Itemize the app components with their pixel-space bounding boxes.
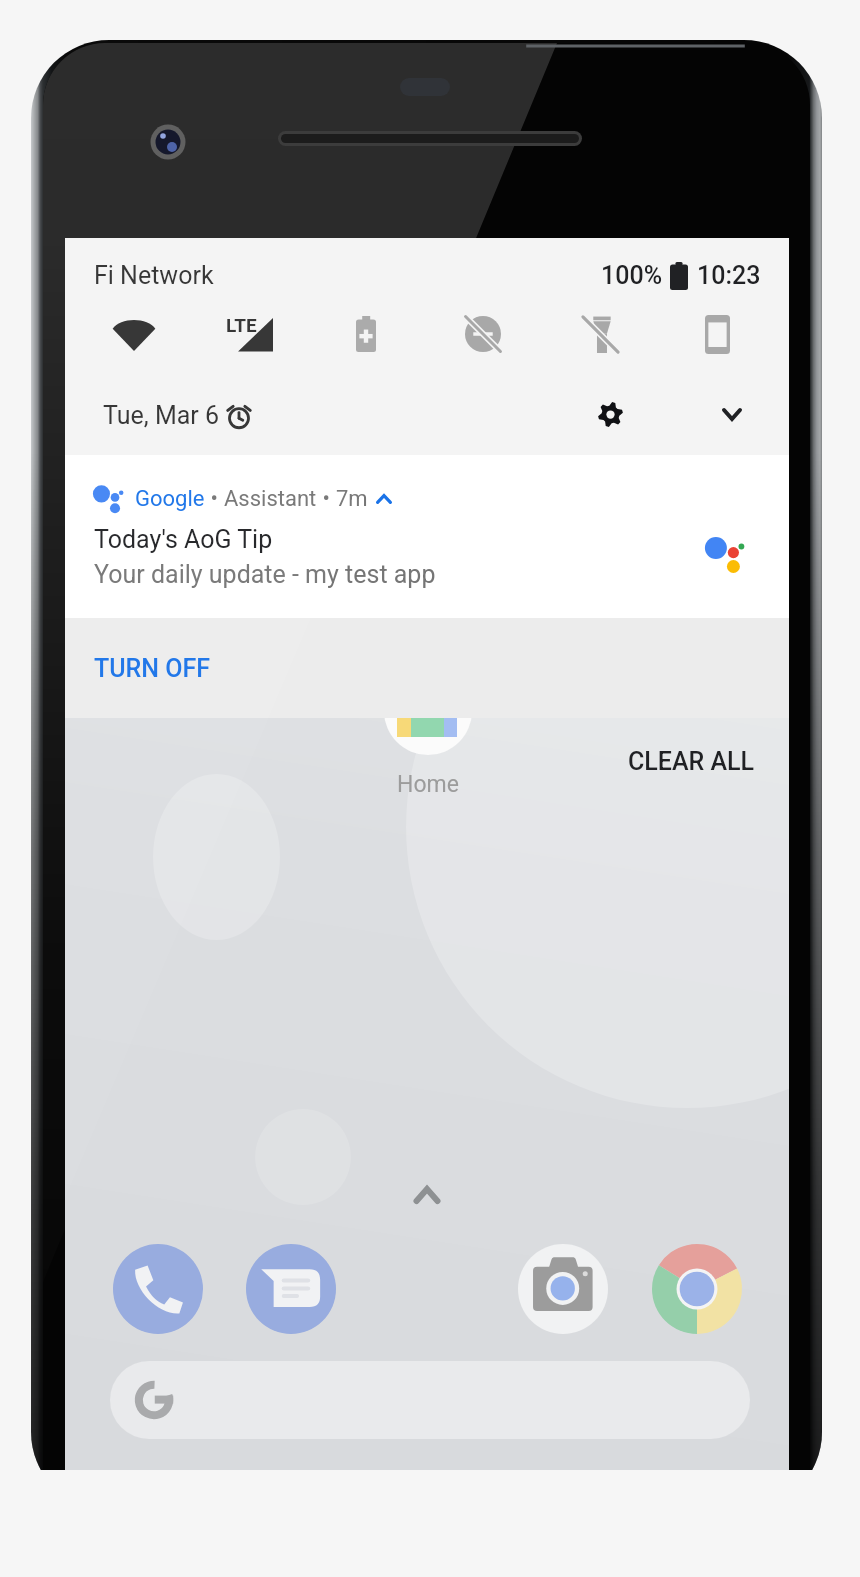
staticText: Fi Network	[94, 261, 214, 290]
button[interactable]: LTE signal	[221, 305, 279, 363]
other: Auto rotate	[705, 315, 730, 354]
other: LTE signal	[227, 314, 273, 354]
button[interactable]	[65, 455, 789, 618]
button[interactable]: Expand quick settings	[710, 392, 754, 436]
staticText: 10:23	[697, 261, 761, 290]
button[interactable]: Messages	[246, 1244, 336, 1334]
staticText: LTE	[226, 314, 257, 336]
other: Battery saver	[356, 316, 376, 352]
staticText: CLEAR ALL	[628, 747, 755, 776]
other: Alarm set	[225, 402, 253, 430]
button[interactable]: Settings	[588, 392, 632, 436]
button[interactable]: Battery saver	[337, 305, 395, 363]
button[interactable]: Camera	[518, 1244, 608, 1334]
button[interactable]: Do not disturb	[454, 305, 512, 363]
staticText: Today's AoG Tip	[94, 525, 273, 554]
staticText: 7m	[336, 486, 368, 512]
staticText: Home	[397, 771, 459, 798]
button[interactable]: Auto rotate	[688, 305, 746, 363]
staticText: •	[317, 486, 336, 512]
button[interactable]: Chrome	[652, 1244, 742, 1334]
staticText: TURN OFF	[94, 654, 211, 683]
button[interactable]: All apps	[402, 1170, 452, 1220]
staticText: 100%	[601, 261, 663, 290]
other: Flashlight off	[582, 316, 619, 353]
other: Wi-Fi	[112, 317, 156, 351]
button[interactable]: Phone	[113, 1244, 203, 1334]
button[interactable]: Wi-Fi	[105, 305, 163, 363]
button[interactable]: Flashlight off	[571, 305, 629, 363]
button[interactable]: CLEAR ALL	[623, 735, 759, 787]
staticText: Google	[135, 486, 205, 512]
staticText: Tue, Mar 6	[103, 401, 220, 430]
staticText: Assistant	[224, 486, 317, 512]
button[interactable]: TURN OFF	[94, 618, 294, 718]
other: Do not disturb	[463, 314, 503, 354]
staticText: •	[205, 486, 224, 512]
button[interactable]: Google Home	[384, 667, 472, 755]
staticText: Your daily update - my test app	[94, 560, 436, 589]
button[interactable]: Google search	[110, 1361, 750, 1439]
